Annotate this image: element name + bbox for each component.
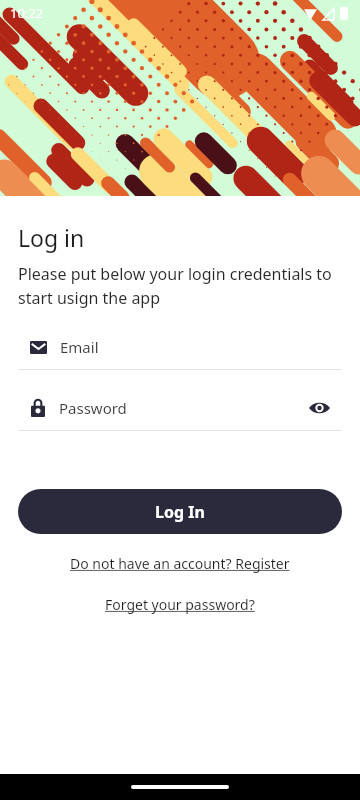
staticText: Do not have an account? Register <box>70 554 290 573</box>
button[interactable]: Log In <box>18 489 342 534</box>
button[interactable]: Forget your password? <box>101 591 259 618</box>
staticText: Forget your password? <box>105 595 255 614</box>
staticText: Log in <box>18 222 85 253</box>
button[interactable]: Email <box>18 333 342 361</box>
staticText: Log In <box>155 501 205 523</box>
staticText: Email <box>60 337 99 357</box>
staticText: Password <box>59 398 127 418</box>
staticText: Please put below your login credentials … <box>18 263 342 309</box>
staticText: 10:22 <box>10 4 44 22</box>
button[interactable]: Show password <box>305 394 333 422</box>
button[interactable]: Password <box>18 394 342 422</box>
button[interactable]: Do not have an account? Register <box>66 550 294 577</box>
